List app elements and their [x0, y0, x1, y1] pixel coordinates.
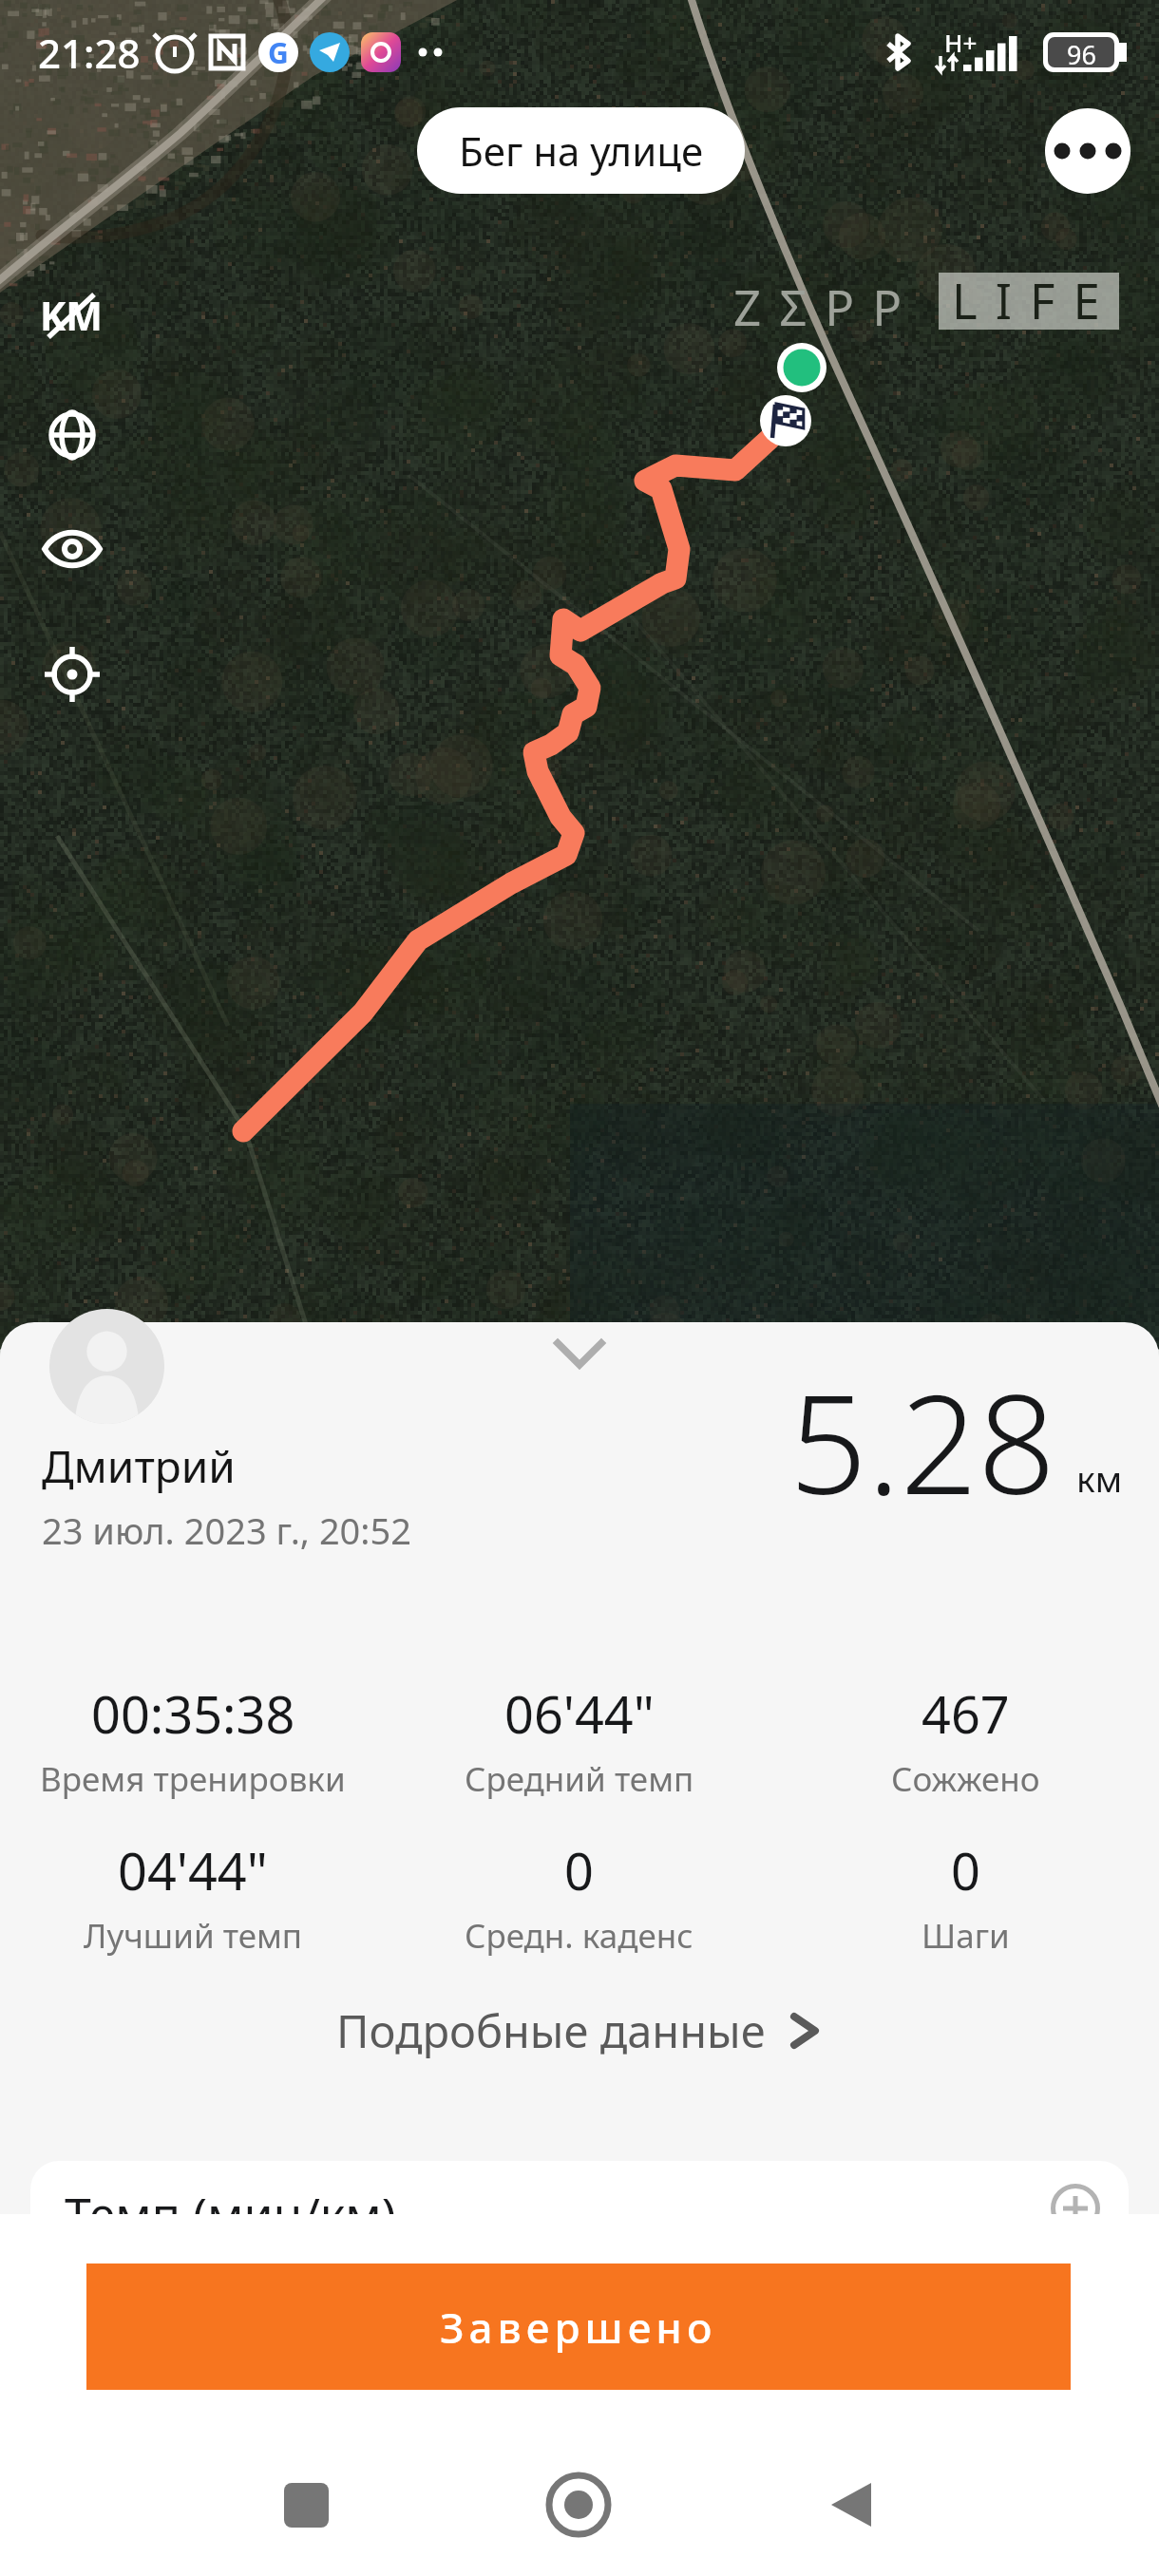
staticText: KM — [40, 289, 103, 342]
button[interactable]: Back — [807, 2459, 898, 2550]
staticText: Шаги — [921, 1913, 1010, 1959]
staticText: Время тренировки — [40, 1756, 346, 1802]
staticText: Темп (мин/км) — [65, 2182, 396, 2246]
staticText: 0 — [951, 1835, 980, 1905]
button[interactable]: Recent apps — [260, 2459, 351, 2550]
staticText: Сожжено — [891, 1756, 1040, 1802]
staticText: 96 — [1067, 37, 1096, 67]
staticText: 0 — [564, 1835, 594, 1905]
button[interactable]: Map layers — [30, 393, 114, 477]
staticText: Завершено — [440, 2299, 717, 2356]
staticText: Дмитрий — [42, 1436, 236, 1496]
staticText: 04'44" — [118, 1835, 268, 1905]
button[interactable]: Подробные данные — [0, 1988, 1159, 2074]
button[interactable]: Distance units — [29, 274, 113, 357]
staticText: Подробные данные — [336, 2000, 766, 2061]
staticText: G — [268, 33, 289, 72]
staticText: 467 — [921, 1678, 1010, 1749]
button[interactable]: My location — [30, 633, 114, 716]
button[interactable]: Темп (мин/км) — [30, 2161, 1129, 2313]
button[interactable]: Home — [533, 2459, 624, 2550]
staticText: 00:35:38 — [91, 1678, 295, 1749]
button[interactable]: Show route — [30, 507, 114, 591]
staticText: Средн. каденс — [465, 1913, 693, 1959]
button[interactable]: Collapse — [524, 1327, 638, 1403]
staticText: км — [1076, 1454, 1123, 1502]
staticText: 5.28 — [789, 1349, 1055, 1534]
button[interactable]: More options — [1045, 108, 1130, 194]
staticText: 21:28 — [38, 26, 141, 80]
button[interactable]: Бег на улице — [417, 107, 745, 194]
button[interactable]: Завершено — [86, 2263, 1071, 2390]
button[interactable]: Profile photo — [49, 1309, 164, 1424]
staticText: 06'44" — [504, 1678, 655, 1749]
staticText: H+ — [944, 26, 978, 59]
staticText: LIFE — [952, 267, 1118, 324]
staticText: Бег на улице — [459, 123, 704, 178]
staticText: Лучший темп — [84, 1913, 303, 1959]
staticText: Средний темп — [465, 1756, 694, 1802]
staticText: ZΣPP — [733, 274, 921, 339]
staticText: 23 июл. 2023 г., 20:52 — [42, 1506, 412, 1555]
